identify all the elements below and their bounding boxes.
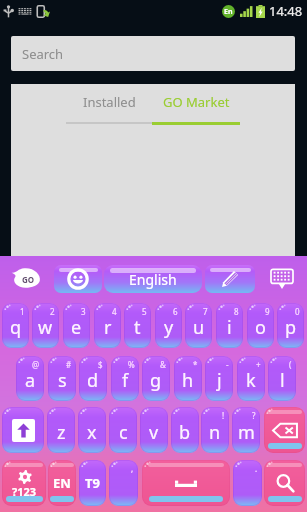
- button[interactable]: u: [185, 303, 212, 348]
- button[interactable]: Backspace: [264, 407, 305, 453]
- button[interactable]: GO Market: [152, 81, 240, 122]
- staticText: &: [160, 359, 166, 370]
- staticText: *: [193, 359, 198, 370]
- staticText: GO: [22, 274, 35, 285]
- staticText: 8: [234, 306, 239, 317]
- staticText: !: [222, 410, 225, 421]
- button[interactable]: w: [32, 303, 59, 348]
- button[interactable]: .: [233, 460, 262, 506]
- staticText: #: [66, 359, 72, 370]
- staticText: k: [246, 368, 256, 393]
- button[interactable]: r: [94, 303, 121, 348]
- staticText: GO Market: [163, 93, 230, 111]
- button[interactable]: m: [232, 407, 260, 453]
- button[interactable]: y: [155, 303, 182, 348]
- button[interactable]: l: [268, 356, 296, 401]
- button[interactable]: i: [216, 303, 243, 348]
- staticText: Installed: [83, 93, 136, 111]
- staticText: EN: [53, 474, 71, 492]
- button[interactable]: b: [171, 407, 199, 453]
- staticText: 6: [173, 306, 178, 317]
- staticText: o: [255, 315, 266, 340]
- staticText: 3: [81, 306, 86, 317]
- staticText: p: [285, 315, 297, 340]
- staticText: i: [227, 315, 232, 340]
- staticText: m: [238, 420, 255, 445]
- staticText: .: [255, 463, 258, 474]
- button[interactable]: n: [201, 407, 229, 453]
- staticText: z: [57, 420, 66, 445]
- button[interactable]: Language EN: [48, 460, 76, 506]
- staticText: q: [10, 315, 22, 340]
- button[interactable]: z: [47, 407, 75, 453]
- staticText: f: [122, 368, 129, 393]
- staticText: ?123: [12, 484, 37, 499]
- button[interactable]: o: [247, 303, 274, 348]
- staticText: T9: [85, 474, 100, 492]
- staticText: $: [98, 359, 103, 370]
- button[interactable]: x: [78, 407, 106, 453]
- staticText: y: [164, 315, 174, 340]
- button[interactable]: ,: [109, 460, 138, 506]
- button[interactable]: Search: [11, 36, 295, 71]
- staticText: c: [119, 420, 128, 445]
- button[interactable]: d: [79, 356, 107, 401]
- staticText: @: [32, 359, 40, 370]
- staticText: %: [128, 359, 135, 370]
- staticText: e: [71, 315, 82, 340]
- staticText: 1: [20, 306, 25, 317]
- button[interactable]: Shift: [2, 407, 44, 453]
- button[interactable]: Space: [142, 460, 230, 506]
- staticText: t: [134, 315, 141, 340]
- staticText: a: [25, 368, 36, 393]
- button[interactable]: g: [142, 356, 170, 401]
- staticText: 4: [112, 306, 117, 317]
- button[interactable]: English: [104, 265, 202, 293]
- staticText: s: [58, 368, 67, 393]
- button[interactable]: Symbols and settings: [2, 460, 46, 506]
- staticText: l: [280, 368, 285, 393]
- button[interactable]: Switch keyboard: [268, 266, 295, 292]
- button[interactable]: t: [124, 303, 151, 348]
- button[interactable]: Search: [264, 460, 305, 506]
- staticText: n: [209, 420, 221, 445]
- button[interactable]: Emoji: [54, 265, 102, 293]
- staticText: j: [217, 368, 222, 393]
- button[interactable]: Handwriting: [205, 265, 255, 293]
- button[interactable]: Installed: [66, 81, 152, 122]
- staticText: g: [150, 368, 162, 393]
- button[interactable]: v: [140, 407, 168, 453]
- button[interactable]: k: [237, 356, 265, 401]
- staticText: ,: [131, 463, 134, 474]
- staticText: 9: [265, 306, 270, 317]
- button[interactable]: q: [2, 303, 29, 348]
- button[interactable]: j: [205, 356, 233, 401]
- button[interactable]: GO Keyboard menu: [8, 263, 44, 293]
- button[interactable]: f: [111, 356, 139, 401]
- staticText: (: [289, 359, 292, 370]
- staticText: 2: [50, 306, 55, 317]
- button[interactable]: e: [63, 303, 90, 348]
- staticText: 0: [295, 306, 300, 317]
- staticText: d: [87, 368, 99, 393]
- staticText: h: [182, 368, 194, 393]
- button[interactable]: h: [174, 356, 202, 401]
- button[interactable]: T9 input: [79, 460, 106, 506]
- staticText: b: [179, 420, 191, 445]
- staticText: v: [149, 420, 159, 445]
- staticText: 7: [203, 306, 208, 317]
- staticText: -: [226, 359, 229, 370]
- staticText: 14:48: [269, 2, 303, 20]
- staticText: ?: [252, 410, 256, 421]
- button[interactable]: s: [48, 356, 76, 401]
- button[interactable]: p: [277, 303, 304, 348]
- staticText: u: [193, 315, 205, 340]
- button[interactable]: a: [16, 356, 44, 401]
- staticText: x: [87, 420, 97, 445]
- staticText: 5: [142, 306, 147, 317]
- staticText: Search: [22, 45, 64, 63]
- button[interactable]: c: [109, 407, 137, 453]
- staticText: En: [224, 7, 233, 17]
- staticText: +: [256, 359, 261, 370]
- staticText: r: [104, 315, 112, 340]
